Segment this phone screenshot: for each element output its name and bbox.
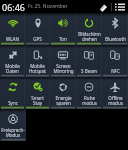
staticText: Sync <box>8 100 18 106</box>
button[interactable]: WLAN <box>0 13 25 45</box>
staticText: Offline modus <box>108 95 123 106</box>
staticText: Fr. 25. November <box>28 3 68 10</box>
staticText: Freisprech- Modus <box>1 127 25 138</box>
button[interactable]: Screen Mirroring <box>50 45 76 77</box>
staticText: GPS <box>33 36 42 42</box>
button[interactable]: Offline modus <box>102 77 128 109</box>
button[interactable]: Mobile Hotspot <box>25 45 50 77</box>
button[interactable]: Edit quick settings <box>95 1 111 13</box>
staticText: Energie sparen <box>55 95 72 106</box>
button[interactable]: GPS <box>25 13 50 45</box>
button[interactable]: S Beam <box>76 45 102 77</box>
button[interactable]: Ton <box>50 13 76 45</box>
button[interactable]: Ruhe modus <box>76 77 102 109</box>
staticText: Bluetooth <box>105 36 126 42</box>
staticText: WLAN <box>6 36 19 42</box>
staticText: Mobile Daten <box>5 63 20 74</box>
staticText: Bildschirm drehen <box>78 31 101 42</box>
button[interactable]: Mobile Daten <box>0 45 25 77</box>
button[interactable]: Bildschirm drehen <box>76 13 102 45</box>
staticText: Ruhe modus <box>82 95 97 106</box>
button[interactable]: Energie sparen <box>50 77 76 109</box>
button[interactable]: NFC <box>102 45 128 77</box>
staticText: 06:46 <box>2 1 26 13</box>
button[interactable]: Sync <box>0 77 25 109</box>
button[interactable]: Settings <box>112 1 127 13</box>
button[interactable]: Smart Stay <box>25 77 50 109</box>
staticText: NFC <box>111 68 120 74</box>
staticText: Smart Stay <box>31 95 44 106</box>
staticText: Ton <box>59 36 67 42</box>
staticText: Screen Mirroring <box>53 63 74 74</box>
staticText: S Beam <box>81 68 97 74</box>
button[interactable]: Bluetooth <box>102 13 128 45</box>
button[interactable]: Freisprech- Modus <box>0 109 26 141</box>
staticText: Mobile Hotspot <box>29 63 46 74</box>
